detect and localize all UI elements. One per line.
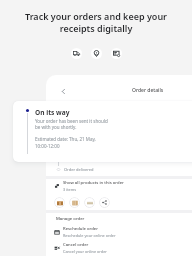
staticText: Cancel your online order — [63, 249, 107, 254]
staticText: Cancel order — [63, 242, 89, 248]
staticText: Order delivered — [64, 167, 94, 172]
staticText: Manage order — [56, 216, 85, 222]
button[interactable] — [69, 197, 80, 208]
staticText: Track your orders and keep your receipts… — [0, 10, 192, 35]
button[interactable]: Reschedule order — [54, 226, 192, 238]
button[interactable]: Delivery tracking — [71, 48, 82, 59]
button[interactable]: Share order — [99, 197, 110, 208]
button[interactable]: Digital receipts — [111, 48, 122, 59]
button[interactable] — [54, 197, 65, 208]
staticText: 3 items — [63, 187, 77, 192]
staticText: Estimated date: Thu, 21 May, 10:00-12:00 — [35, 136, 96, 149]
staticText: Your order has been sent it should be wi… — [35, 118, 108, 131]
staticText: Reschedule your online order — [63, 233, 116, 238]
staticText: On its way — [35, 108, 70, 117]
staticText: Reschedule order — [63, 226, 99, 232]
button[interactable]: Cancel order — [54, 242, 192, 254]
button[interactable]: Store locations — [91, 48, 102, 59]
button[interactable]: Back — [58, 86, 68, 96]
button[interactable]: Show all products in this order — [54, 180, 192, 192]
staticText: Order details — [132, 87, 164, 94]
staticText: Show all products in this order — [63, 180, 124, 186]
button[interactable] — [84, 197, 95, 208]
